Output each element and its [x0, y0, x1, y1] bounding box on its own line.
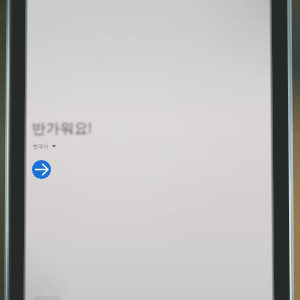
button[interactable]: 한국어	[33, 143, 56, 149]
staticText: 반가워요!	[32, 118, 92, 137]
staticText: 한국어	[33, 143, 48, 149]
button[interactable]: Next	[32, 160, 51, 179]
